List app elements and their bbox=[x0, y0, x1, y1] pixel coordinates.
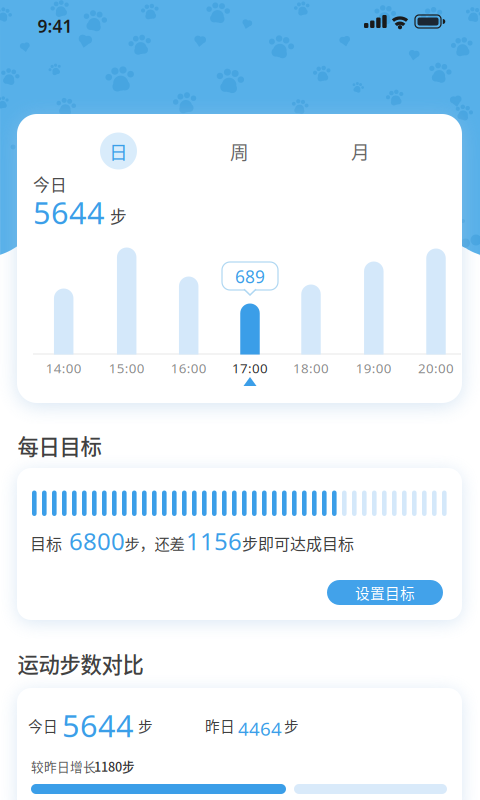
staticText: 4464 bbox=[238, 716, 282, 741]
staticText: 15:00 bbox=[109, 359, 145, 377]
staticText: 今日 bbox=[33, 172, 67, 196]
staticText: 16:00 bbox=[171, 359, 207, 377]
staticText: 周 bbox=[230, 137, 249, 164]
staticText: 689 bbox=[235, 265, 265, 288]
staticText: 步 bbox=[284, 715, 299, 736]
staticText: 步，还差 bbox=[124, 532, 184, 554]
staticText: 每日目标 bbox=[17, 430, 101, 461]
staticText: 昨日 bbox=[205, 715, 235, 736]
staticText: 6800 bbox=[69, 525, 125, 557]
staticText: 19:00 bbox=[356, 359, 392, 377]
staticText: 5644 bbox=[62, 705, 134, 746]
button[interactable]: 日 bbox=[58, 132, 179, 170]
staticText: 1180步 bbox=[94, 757, 135, 775]
staticText: 月 bbox=[351, 137, 370, 164]
staticText: 1156 bbox=[186, 525, 242, 557]
staticText: 今日 bbox=[28, 715, 58, 736]
staticText: 运动步数对比 bbox=[17, 648, 143, 679]
button[interactable]: 月 bbox=[300, 132, 421, 170]
staticText: 5644 bbox=[33, 192, 105, 233]
staticText: 14:00 bbox=[46, 359, 82, 377]
staticText: 设置目标 bbox=[355, 582, 415, 603]
staticText: 18:00 bbox=[293, 359, 329, 377]
staticText: 日 bbox=[109, 137, 128, 164]
button[interactable]: 设置目标 bbox=[327, 580, 443, 605]
staticText: 目标 bbox=[30, 531, 62, 555]
staticText: 步 bbox=[138, 715, 153, 736]
staticText: 较昨日增长 bbox=[31, 757, 96, 775]
staticText: 20:00 bbox=[418, 359, 454, 377]
staticText: 步即可达成目标 bbox=[242, 531, 354, 555]
button[interactable]: 周 bbox=[179, 132, 300, 170]
staticText: 17:00 bbox=[232, 359, 268, 377]
staticText: 步 bbox=[110, 204, 127, 228]
staticText: 9:41 bbox=[37, 14, 72, 37]
